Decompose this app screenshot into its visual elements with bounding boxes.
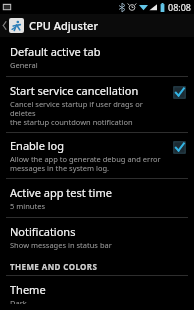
button[interactable]: Notifications: [0, 218, 194, 256]
button[interactable]: Navigate up: [0, 18, 101, 33]
button[interactable]: Active app test time: [0, 179, 194, 217]
staticText: Notifications: [10, 224, 76, 239]
staticText: Start service cancellation: [10, 83, 139, 98]
staticText: Dark: [10, 298, 27, 304]
staticText: Theme: [10, 282, 46, 297]
staticText: Allow the app to generate debug and erro…: [10, 154, 161, 173]
staticText: Cancel service startup if user drags or …: [10, 99, 167, 127]
button[interactable]: Start service cancellation: [0, 77, 194, 132]
button[interactable]: Toggle Start service cancellation: [173, 86, 186, 99]
button[interactable]: Toggle Enable log: [173, 141, 186, 154]
button[interactable]: Theme: [0, 276, 194, 310]
staticText: 5 minutes: [10, 201, 45, 211]
staticText: 08:08: [168, 1, 192, 13]
button[interactable]: Default active tab: [0, 37, 194, 76]
staticText: Active app test time: [10, 185, 112, 200]
staticText: Show messages in status bar: [10, 240, 112, 250]
staticText: General: [10, 60, 38, 70]
button[interactable]: Enable log: [0, 133, 194, 178]
staticText: CPU Adjuster: [29, 18, 99, 33]
staticText: Default active tab: [10, 44, 101, 59]
staticText: Enable log: [10, 138, 65, 153]
staticText: THEME AND COLORS: [10, 261, 98, 272]
